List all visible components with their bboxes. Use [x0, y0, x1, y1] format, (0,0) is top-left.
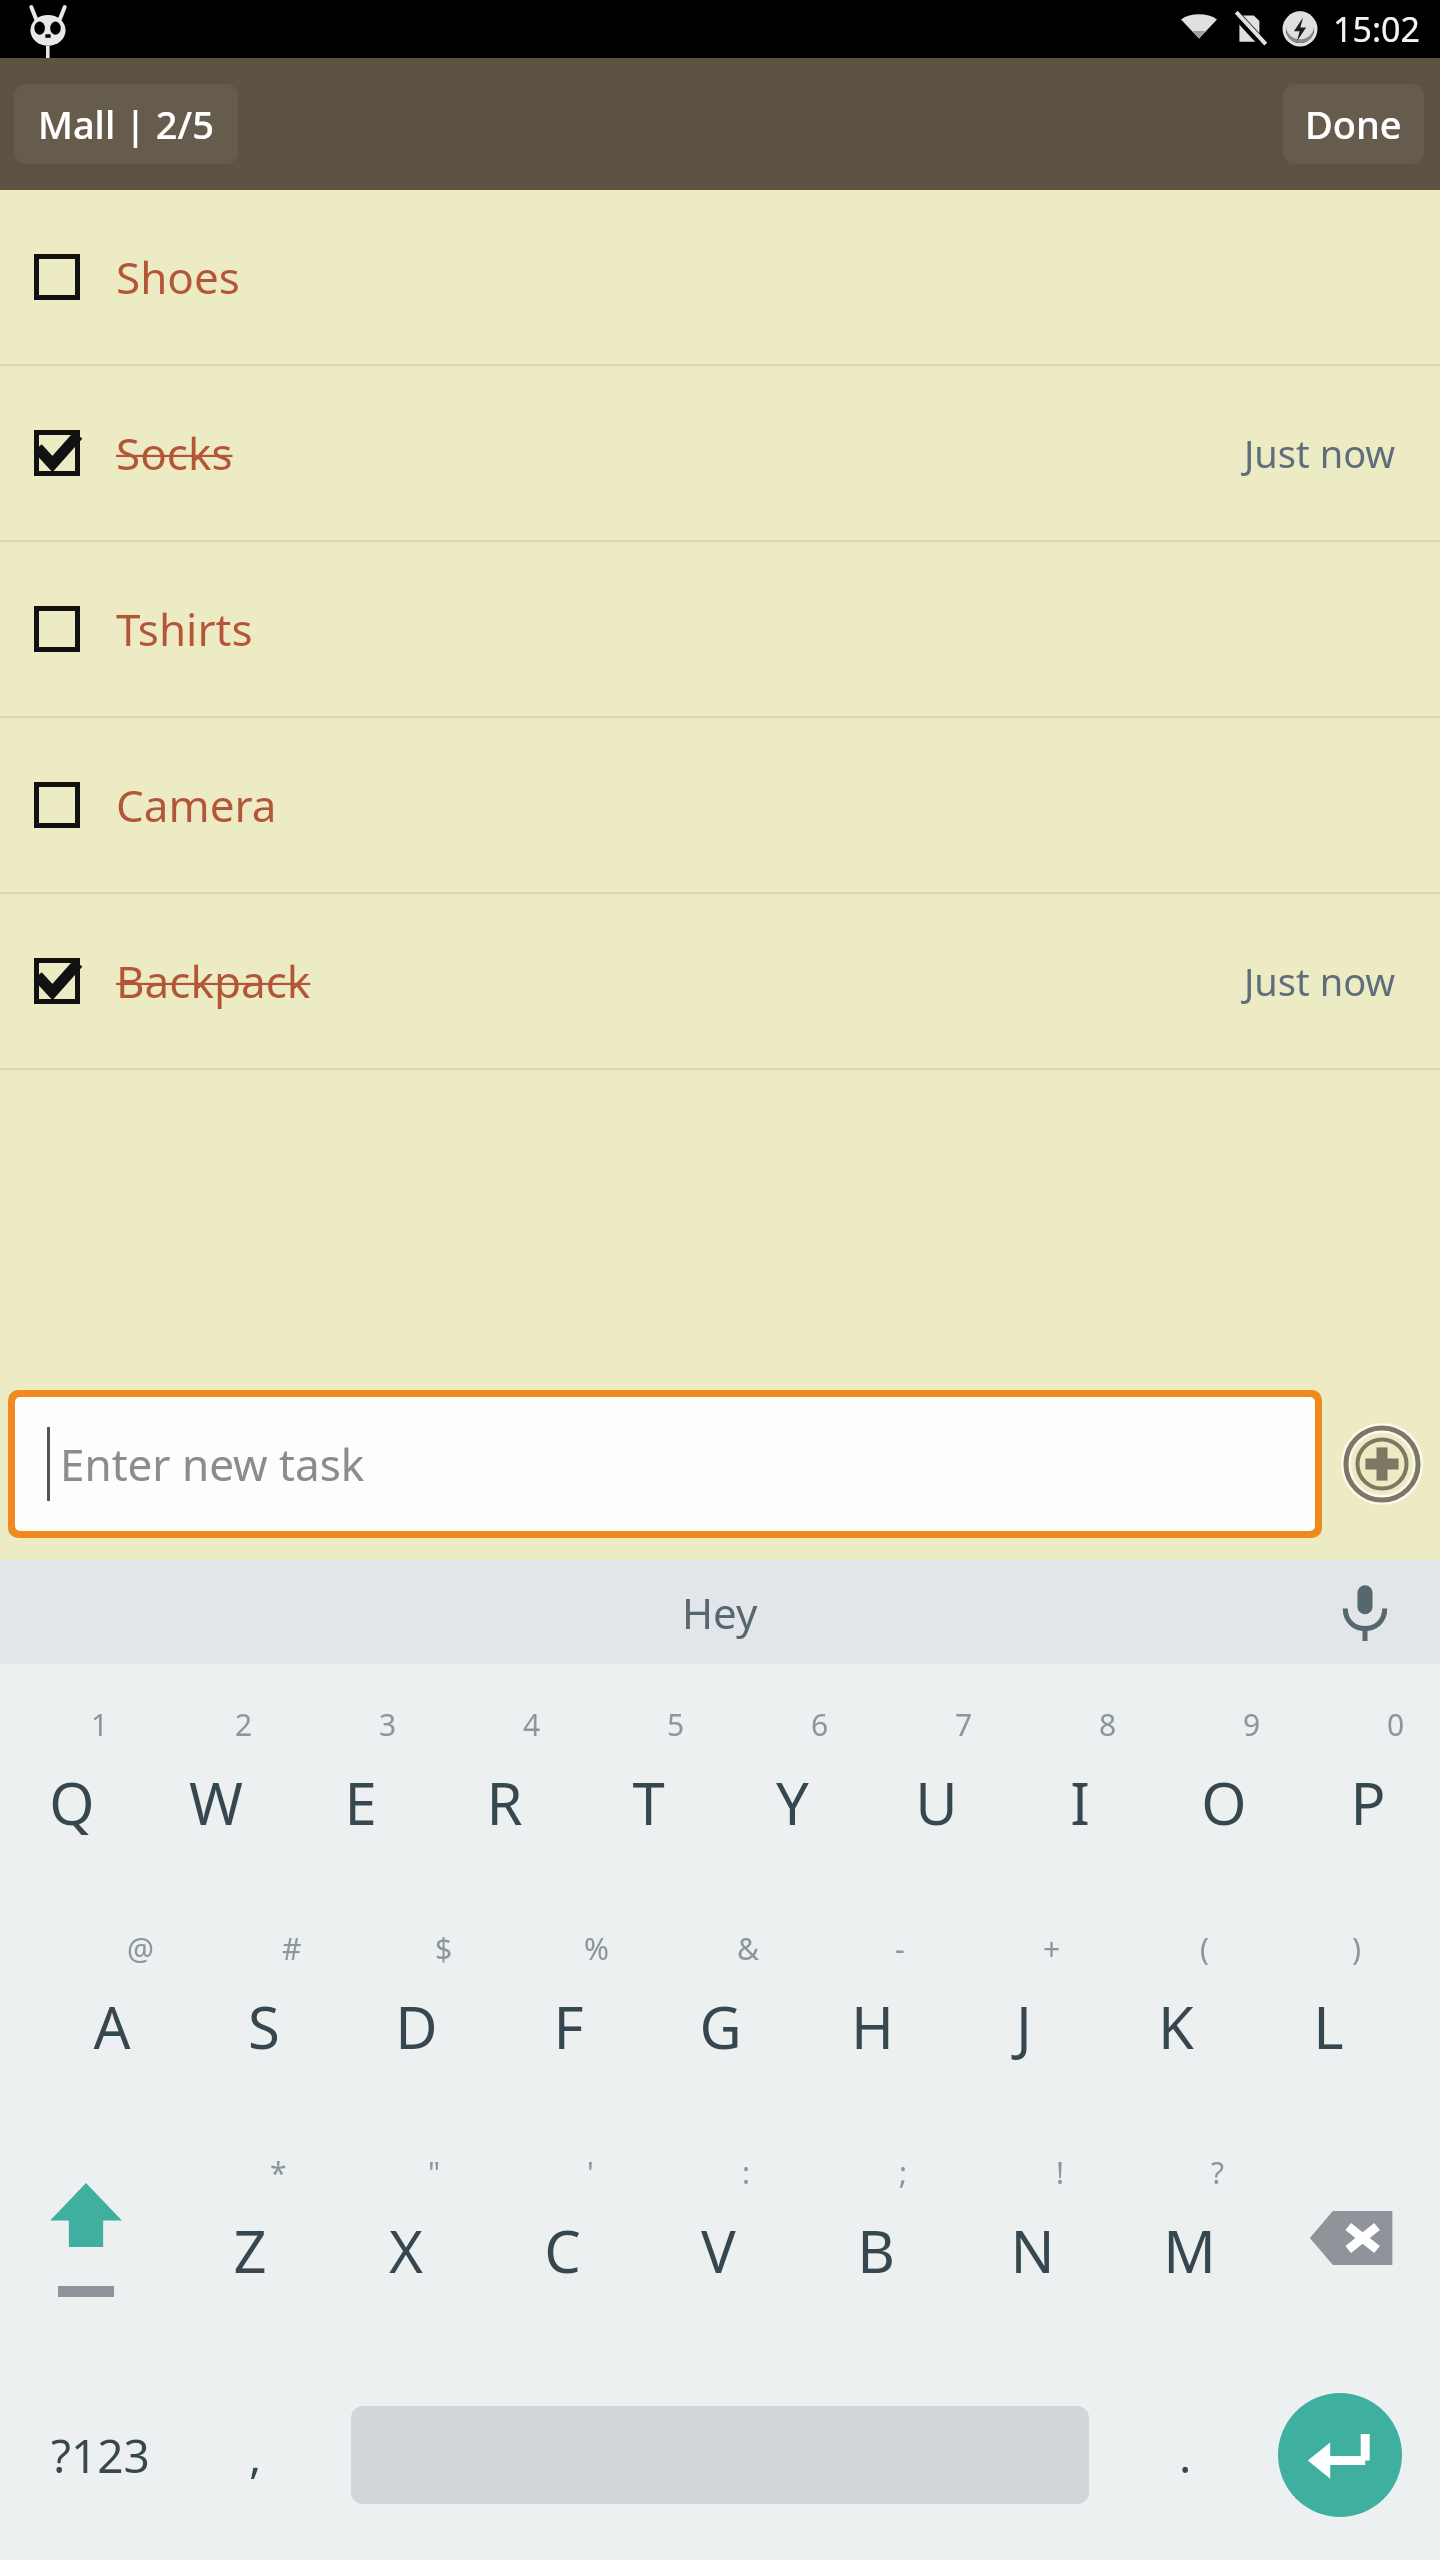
staticText: Camera	[116, 775, 277, 835]
button[interactable]: ?	[1111, 2126, 1268, 2350]
button[interactable]: Backspace	[1268, 2126, 1440, 2350]
button[interactable]	[310, 2350, 1130, 2560]
staticText: 15:02	[1333, 6, 1420, 52]
staticText: S	[248, 1987, 280, 2066]
button[interactable]: Enter new task	[15, 1397, 1315, 1531]
staticText: 1	[91, 1704, 109, 1745]
staticText: "	[428, 2152, 441, 2193]
button[interactable]: ?123	[0, 2350, 200, 2560]
staticText: Done	[1305, 98, 1402, 150]
staticText: Enter new task	[60, 1434, 365, 1494]
staticText: Just now	[1244, 427, 1396, 479]
button[interactable]: Shift	[0, 2126, 172, 2350]
staticText: B	[857, 2211, 895, 2290]
staticText: O	[1201, 1763, 1247, 1842]
staticText: $	[435, 1928, 453, 1969]
staticText: K	[1158, 1987, 1194, 2066]
staticText: R	[486, 1763, 523, 1842]
button[interactable]: 3	[288, 1678, 432, 1902]
staticText: .	[1179, 2424, 1192, 2487]
staticText: V	[701, 2211, 736, 2290]
staticText: @	[127, 1928, 154, 1969]
button[interactable]: Hey	[682, 1584, 758, 1641]
staticText: (	[1200, 1928, 1209, 1969]
button[interactable]: (	[1100, 1902, 1252, 2126]
staticText: E	[344, 1763, 377, 1842]
staticText: H	[851, 1987, 894, 2066]
staticText: ?123	[51, 2424, 150, 2487]
staticText: 3	[379, 1704, 397, 1745]
button[interactable]: 8	[1008, 1678, 1152, 1902]
button[interactable]: Done	[1283, 84, 1424, 164]
staticText: 9	[1243, 1704, 1261, 1745]
button[interactable]: *	[172, 2126, 328, 2350]
staticText: X	[389, 2211, 423, 2290]
staticText: Socks	[116, 423, 233, 483]
staticText: 0	[1387, 1704, 1405, 1745]
staticText: 2	[235, 1704, 253, 1745]
staticText: Q	[49, 1763, 95, 1842]
staticText: -	[895, 1928, 905, 1969]
staticText: J	[1016, 1987, 1032, 2066]
button[interactable]: #	[188, 1902, 340, 2126]
button[interactable]: 1	[0, 1678, 144, 1902]
staticText: 4	[523, 1704, 541, 1745]
button[interactable]: 2	[144, 1678, 288, 1902]
button[interactable]: -	[796, 1902, 948, 2126]
staticText: I	[1070, 1763, 1090, 1842]
staticText: :	[742, 2152, 751, 2193]
button[interactable]: +	[948, 1902, 1100, 2126]
staticText: &	[737, 1928, 759, 1969]
button[interactable]: '	[484, 2126, 640, 2350]
staticText: '	[587, 2152, 594, 2193]
staticText: Just now	[1244, 955, 1396, 1007]
staticText: Tshirts	[116, 599, 253, 659]
button[interactable]: 5	[576, 1678, 720, 1902]
button[interactable]: )	[1252, 1902, 1404, 2126]
button[interactable]: Backpack	[0, 894, 1440, 1070]
button[interactable]: 6	[720, 1678, 864, 1902]
staticText: 8	[1099, 1704, 1117, 1745]
staticText: Mall | 2/5	[38, 98, 214, 150]
staticText: *	[270, 2152, 287, 2193]
button[interactable]: ;	[797, 2126, 954, 2350]
button[interactable]: Enter	[1240, 2350, 1440, 2560]
staticText: !	[1056, 2152, 1065, 2193]
button[interactable]: "	[328, 2126, 484, 2350]
staticText: G	[699, 1987, 742, 2066]
button[interactable]: :	[640, 2126, 797, 2350]
button[interactable]: ,	[200, 2350, 310, 2560]
button[interactable]: Add task	[1334, 1416, 1430, 1512]
staticText: C	[544, 2211, 581, 2290]
button[interactable]: 4	[432, 1678, 576, 1902]
button[interactable]: Camera	[0, 718, 1440, 894]
button[interactable]: $	[340, 1902, 492, 2126]
button[interactable]: .	[1130, 2350, 1240, 2560]
button[interactable]: 0	[1296, 1678, 1440, 1902]
button[interactable]: Mall | 2/5	[14, 84, 238, 164]
button[interactable]: !	[954, 2126, 1111, 2350]
button[interactable]: 9	[1152, 1678, 1296, 1902]
button[interactable]: &	[644, 1902, 796, 2126]
button[interactable]: Voice input	[1330, 1577, 1400, 1647]
button[interactable]: Socks	[0, 366, 1440, 542]
staticText: T	[632, 1763, 665, 1842]
staticText: ?	[1211, 2152, 1225, 2193]
button[interactable]: %	[492, 1902, 644, 2126]
staticText: F	[553, 1987, 584, 2066]
staticText: 5	[667, 1704, 685, 1745]
staticText: #	[282, 1928, 302, 1969]
staticText: %	[584, 1928, 609, 1969]
staticText: Shoes	[116, 247, 240, 307]
button[interactable]: Tshirts	[0, 542, 1440, 718]
staticText: P	[1350, 1763, 1386, 1842]
staticText: )	[1352, 1928, 1361, 1969]
staticText: M	[1163, 2211, 1216, 2290]
button[interactable]: @	[36, 1902, 188, 2126]
button[interactable]: 7	[864, 1678, 1008, 1902]
staticText: Z	[233, 2211, 267, 2290]
staticText: 7	[955, 1704, 973, 1745]
staticText: Y	[776, 1763, 809, 1842]
staticText: 6	[811, 1704, 829, 1745]
button[interactable]: Shoes	[0, 190, 1440, 366]
